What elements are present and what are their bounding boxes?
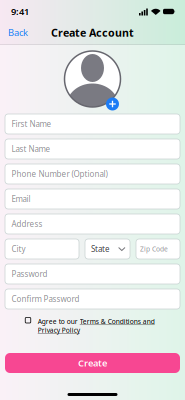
button[interactable]: Email (5, 189, 180, 209)
staticText: State (91, 244, 110, 254)
staticText: Back (8, 26, 28, 39)
staticText: Password (11, 269, 47, 279)
button[interactable]: State (85, 239, 130, 259)
button[interactable]: Password (5, 264, 180, 284)
button[interactable]: City (5, 239, 79, 259)
staticText: Email (11, 194, 30, 204)
staticText: Address (11, 219, 42, 229)
staticText: First Name (11, 119, 51, 129)
staticText: Last Name (11, 144, 50, 154)
button[interactable]: Address (5, 214, 180, 234)
button[interactable]: Create (5, 353, 180, 373)
staticText: Confirm Password (11, 294, 79, 304)
staticText: 9:41 (11, 5, 29, 18)
button[interactable]: Agree to our Terms & Conditions and Priv… (20, 317, 165, 335)
staticText: Agree to our Terms & Conditions and Priv… (38, 317, 155, 335)
staticText: Create (78, 357, 107, 369)
staticText: Phone Number (Optional) (11, 169, 107, 179)
button[interactable]: Last Name (5, 139, 180, 159)
button[interactable]: Back (0, 26, 28, 39)
button[interactable]: Zip Code (136, 239, 180, 259)
staticText: City (11, 244, 25, 254)
staticText: Zip Code (140, 245, 168, 253)
button[interactable]: Phone Number (Optional) (5, 164, 180, 184)
button[interactable]: Add photo (106, 97, 119, 110)
button[interactable]: First Name (5, 114, 180, 134)
staticText: Create Account (51, 25, 134, 40)
button[interactable]: Confirm Password (5, 289, 180, 309)
